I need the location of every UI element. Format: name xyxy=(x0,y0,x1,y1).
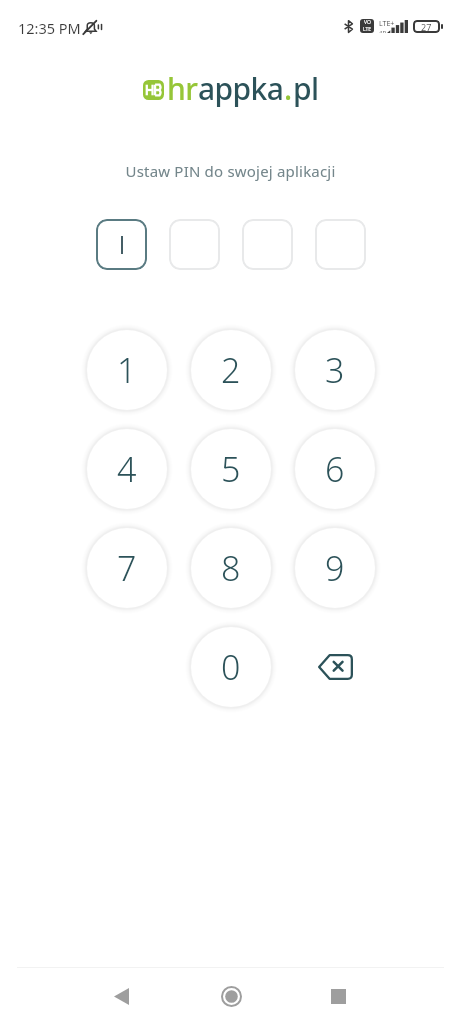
button[interactable]: PIN digit 4 xyxy=(315,219,366,270)
button[interactable]: 7 xyxy=(87,528,167,608)
staticText: LTE+ xyxy=(379,19,395,29)
staticText: 5 xyxy=(221,446,241,492)
button[interactable]: 0 xyxy=(191,627,271,707)
staticText: 3 xyxy=(325,347,345,393)
staticText: 7 xyxy=(117,545,137,591)
button[interactable]: Back xyxy=(99,974,143,1018)
button[interactable]: 8 xyxy=(191,528,271,608)
button[interactable]: 6 xyxy=(295,429,375,509)
staticText: 0 xyxy=(221,644,241,690)
staticText: . xyxy=(284,68,293,109)
button[interactable]: 9 xyxy=(295,528,375,608)
button[interactable]: Backspace xyxy=(289,621,381,713)
button[interactable]: PIN digit 1 xyxy=(96,219,147,270)
staticText: LTE xyxy=(363,26,372,33)
staticText: VO xyxy=(364,19,371,26)
button[interactable]: 1 xyxy=(87,330,167,410)
staticText: 9 xyxy=(325,545,345,591)
staticText: pl xyxy=(293,68,319,109)
staticText: 4P xyxy=(379,29,387,33)
staticText: Ustaw PIN do swojej aplikacji xyxy=(0,161,461,181)
staticText: appka xyxy=(198,68,284,109)
staticText: 27 xyxy=(421,21,432,33)
button[interactable]: Home xyxy=(209,974,253,1018)
staticText: 8 xyxy=(221,545,241,591)
button[interactable]: 2 xyxy=(191,330,271,410)
staticText: 2 xyxy=(221,347,241,393)
button[interactable]: 3 xyxy=(295,330,375,410)
staticText: 1 xyxy=(117,347,137,393)
button[interactable]: PIN digit 3 xyxy=(242,219,293,270)
button[interactable]: 4 xyxy=(87,429,167,509)
button[interactable]: Recents xyxy=(316,974,360,1018)
staticText: 6 xyxy=(325,446,345,492)
staticText: 4 xyxy=(117,446,137,492)
button[interactable]: 5 xyxy=(191,429,271,509)
staticText: 12:35 PM xyxy=(18,18,81,38)
staticText: hr xyxy=(167,68,198,109)
button[interactable]: PIN digit 2 xyxy=(169,219,220,270)
